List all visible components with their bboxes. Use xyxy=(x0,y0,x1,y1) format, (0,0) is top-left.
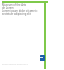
staticText: Museum of the Arts xyxy=(2,3,27,7)
staticText: de Lorem xyxy=(2,6,14,10)
staticText: Lorem ipsum dolor sit amet c xyxy=(2,9,38,13)
staticText: lorem ipsum dolor sit a xyxy=(2,62,28,65)
button[interactable]: Scroll track xyxy=(44,3,46,69)
staticText: sectetuer adipiscing elit xyxy=(2,12,31,16)
button[interactable]: Add xyxy=(40,55,45,61)
